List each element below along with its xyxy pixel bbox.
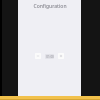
staticText: Configuration	[33, 3, 67, 10]
button[interactable]: Decrease	[35, 53, 41, 59]
staticText: 01:00	[46, 55, 54, 59]
button[interactable]: 01:00	[45, 54, 54, 59]
button[interactable]: Increase	[58, 53, 64, 59]
